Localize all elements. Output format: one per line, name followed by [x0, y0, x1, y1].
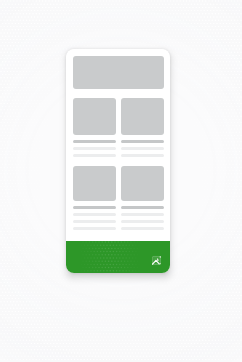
button[interactable] — [121, 166, 164, 230]
button[interactable] — [121, 98, 164, 157]
button[interactable] — [73, 98, 116, 157]
button[interactable]: Open gallery — [148, 252, 164, 268]
button[interactable] — [73, 166, 116, 230]
